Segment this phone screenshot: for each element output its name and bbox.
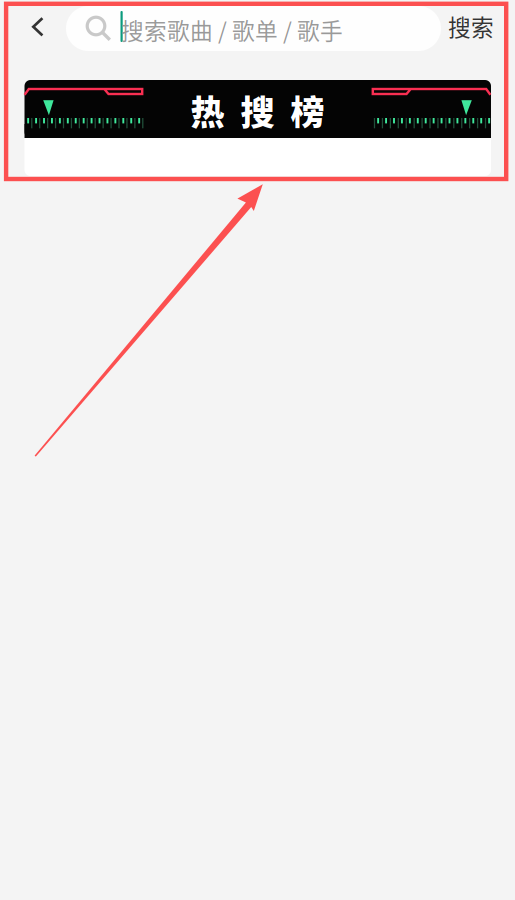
staticText: 搜索歌曲 / 歌单 / 歌手	[121, 13, 343, 46]
staticText: 搜索	[448, 10, 494, 42]
button[interactable]: 搜索	[443, 2, 499, 50]
button[interactable]: 搜索歌曲 / 歌单 / 歌手	[66, 6, 441, 51]
button[interactable]: Back	[0, 0, 56, 56]
staticText: 热 搜 榜	[190, 85, 324, 135]
